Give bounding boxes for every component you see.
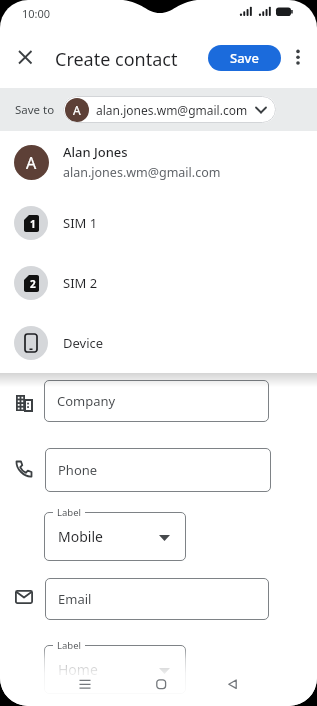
staticText: Home xyxy=(58,660,98,679)
staticText: SIM 1 xyxy=(63,214,98,232)
button[interactable]: A xyxy=(0,131,317,193)
button[interactable]: Mobile xyxy=(44,512,186,561)
staticText: Label xyxy=(57,639,81,652)
staticText: Mobile xyxy=(58,527,103,546)
button[interactable]: Save xyxy=(208,45,281,71)
button[interactable]: Email xyxy=(45,578,269,620)
staticText: A xyxy=(73,102,81,118)
button[interactable] xyxy=(73,674,97,698)
staticText: Phone xyxy=(58,461,98,479)
staticText: alan.jones.wm@gmail.com xyxy=(63,164,221,181)
staticText: SIM 2 xyxy=(63,274,98,292)
button[interactable] xyxy=(7,39,43,75)
staticText: Save xyxy=(230,49,259,67)
staticText: alan.jones.wm@gmail.com xyxy=(96,102,248,118)
button[interactable] xyxy=(149,674,173,698)
button[interactable]: Phone xyxy=(45,448,271,492)
button[interactable]: 2 xyxy=(0,253,317,313)
button[interactable]: Company xyxy=(44,380,269,422)
button[interactable]: Device xyxy=(0,313,317,373)
button[interactable] xyxy=(286,45,310,69)
staticText: 10:00 xyxy=(22,6,51,21)
button[interactable]: A xyxy=(63,96,276,123)
staticText: Label xyxy=(57,506,81,519)
button[interactable] xyxy=(221,674,245,698)
button[interactable]: 1 xyxy=(0,193,317,253)
staticText: Alan Jones xyxy=(63,143,128,161)
button[interactable]: Home xyxy=(44,645,186,694)
staticText: Save to xyxy=(15,102,55,118)
staticText: Create contact xyxy=(55,47,178,72)
staticText: Company xyxy=(57,392,116,410)
staticText: A xyxy=(26,152,37,174)
staticText: Device xyxy=(63,334,104,352)
staticText: Email xyxy=(58,590,92,608)
staticText: 2 xyxy=(30,277,36,291)
staticText: 1 xyxy=(30,217,36,231)
